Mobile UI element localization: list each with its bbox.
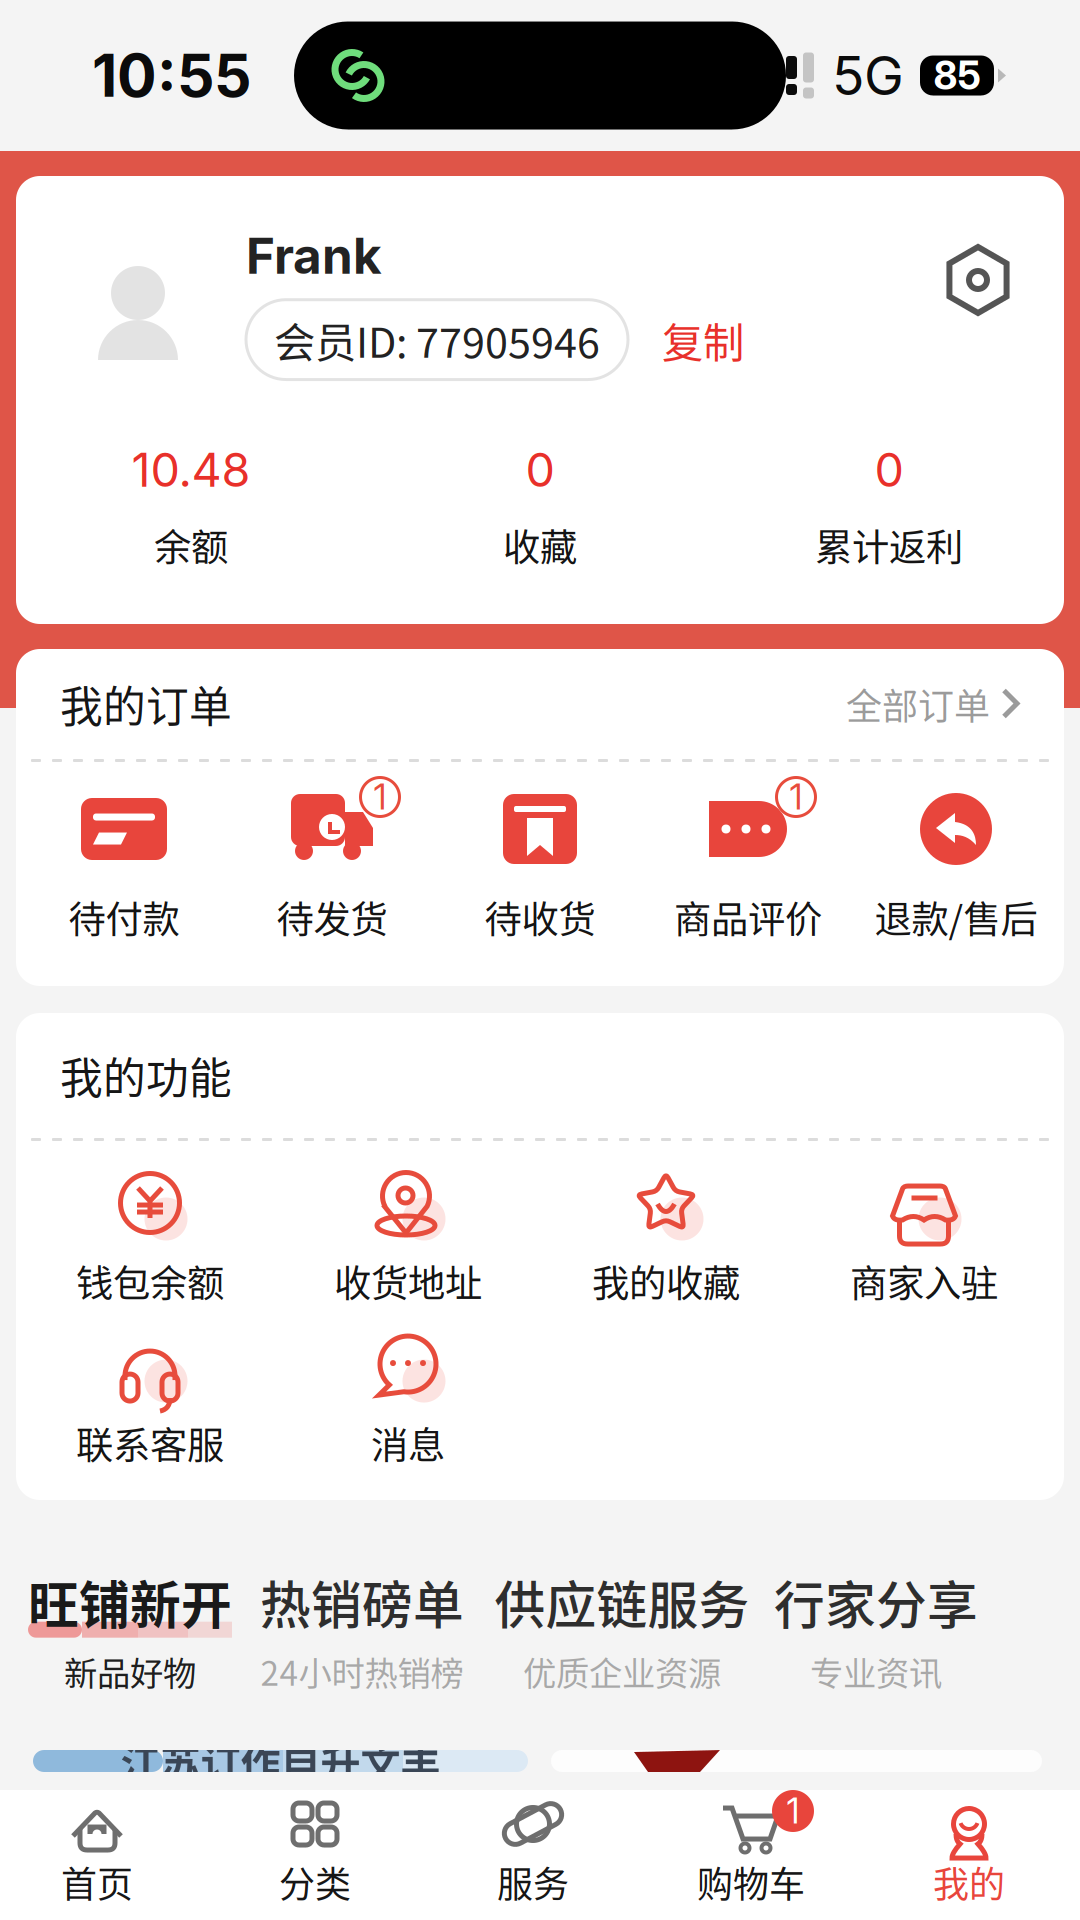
button[interactable]: 消息 <box>279 1324 537 1470</box>
staticText: 5G <box>832 43 904 108</box>
button[interactable]: 待收货 <box>436 790 644 944</box>
staticText: 首页 <box>61 1856 133 1908</box>
staticText: 收货地址 <box>334 1254 482 1308</box>
staticText: 专业资讯 <box>810 1647 942 1695</box>
staticText: 江苏订作自升文丰 <box>120 1732 440 1790</box>
button[interactable]: 1 <box>644 790 852 944</box>
button[interactable]: 1 <box>642 1800 860 1908</box>
button[interactable]: 供应链服务 <box>464 1579 780 1695</box>
staticText: 分类 <box>279 1856 351 1908</box>
staticText: 复制 <box>662 310 744 370</box>
staticText: 我的收藏 <box>592 1254 740 1308</box>
button[interactable]: 我的 <box>860 1800 1078 1908</box>
staticText: 收藏 <box>503 518 577 572</box>
staticText: 热销磅单 <box>260 1565 464 1639</box>
staticText: 钱包余额 <box>76 1254 224 1308</box>
button[interactable]: 0 <box>714 441 1063 572</box>
button[interactable]: 我的收藏 <box>537 1162 795 1308</box>
staticText: 服务 <box>497 1856 569 1908</box>
staticText: 商家入驻 <box>850 1254 998 1308</box>
staticText: 24小时热销榜 <box>260 1647 463 1695</box>
staticText: 联系客服 <box>76 1416 224 1470</box>
staticText: 我的 <box>933 1856 1005 1908</box>
button[interactable]: 0 <box>365 441 714 572</box>
button[interactable]: 联系客服 <box>21 1324 279 1470</box>
staticText: 0 <box>874 441 903 498</box>
button[interactable]: 退款/售后 <box>852 790 1060 944</box>
staticText: 消息 <box>371 1416 445 1470</box>
button[interactable]: 分类 <box>206 1800 424 1908</box>
staticText: 10:55 <box>92 40 251 111</box>
staticText: 待付款 <box>68 890 179 944</box>
staticText: 退款/售后 <box>874 890 1037 944</box>
button[interactable]: 收货地址 <box>279 1162 537 1308</box>
button[interactable]: 首页 <box>0 1800 206 1908</box>
button[interactable]: 服务 <box>424 1800 642 1908</box>
button[interactable]: 热销磅单 <box>260 1579 464 1695</box>
staticText: 余额 <box>154 518 228 572</box>
staticText: 1 <box>373 776 386 818</box>
staticText: 1 <box>786 1790 799 1832</box>
button[interactable]: 复制 <box>662 310 744 370</box>
staticText: 0 <box>525 441 554 498</box>
staticText: 商品评价 <box>674 890 822 944</box>
button[interactable]: 商家入驻 <box>795 1162 1053 1308</box>
staticText: 会员ID: 77905946 <box>274 310 600 370</box>
staticText: 待发货 <box>276 890 387 944</box>
staticText: 供应链服务 <box>494 1565 749 1639</box>
staticText: 新品好物 <box>64 1647 196 1695</box>
staticText: 累计返利 <box>815 518 963 572</box>
button[interactable]: 钱包余额 <box>21 1162 279 1308</box>
button[interactable]: 待付款 <box>20 790 228 944</box>
staticText: 全部订单 <box>846 678 990 730</box>
staticText: 1 <box>789 776 802 818</box>
button[interactable]: 旺铺新开 <box>0 1579 260 1695</box>
staticText: 85 <box>933 52 980 99</box>
button[interactable]: 1 <box>228 790 436 944</box>
button[interactable]: 行家分享 <box>780 1579 972 1695</box>
button[interactable]: 10.48 <box>16 441 365 572</box>
button[interactable]: 全部订单 <box>846 678 1020 730</box>
staticText: 优质企业资源 <box>523 1647 721 1695</box>
staticText: 行家分享 <box>774 1565 978 1639</box>
staticText: 待收货 <box>484 890 595 944</box>
staticText: 我的功能 <box>60 1045 232 1106</box>
staticText: 我的订单 <box>60 673 232 735</box>
staticText: 10.48 <box>131 441 250 498</box>
button[interactable]: 设置 <box>942 244 1014 316</box>
staticText: 购物车 <box>697 1856 805 1908</box>
staticText: Frank <box>246 226 382 286</box>
staticText: 旺铺新开 <box>28 1565 232 1639</box>
